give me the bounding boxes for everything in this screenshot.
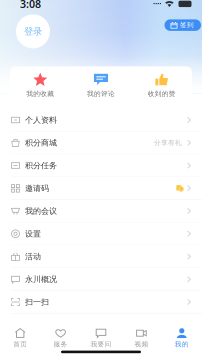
staticText: 签到: [180, 21, 194, 29]
staticText: 我的评论: [87, 90, 115, 98]
staticText: 我的: [175, 340, 189, 348]
staticText: 活动: [25, 252, 41, 261]
button[interactable]: 签到: [164, 19, 201, 31]
staticText: 登录: [24, 26, 42, 37]
staticText: 分享有礼: [154, 139, 182, 147]
button[interactable]: 我的会议: [0, 200, 202, 223]
staticText: 积分商城: [25, 138, 57, 148]
staticText: 收到的赞: [148, 90, 176, 98]
staticText: 永川概况: [25, 274, 57, 284]
button[interactable]: 积分任务: [0, 154, 202, 177]
staticText: 我要问: [90, 340, 111, 348]
staticText: 个人资料: [25, 115, 57, 125]
button[interactable]: 我要问: [81, 328, 121, 348]
button[interactable]: 服务: [40, 328, 81, 348]
staticText: 3:08: [20, 0, 41, 11]
button[interactable]: 个人资料: [0, 109, 202, 132]
button[interactable]: 我的评论: [71, 73, 131, 98]
staticText: 我的会议: [25, 206, 57, 216]
button[interactable]: 视频: [121, 328, 162, 348]
button[interactable]: 设置: [0, 223, 202, 245]
button[interactable]: 我的收藏: [10, 73, 71, 98]
staticText: 服务: [54, 340, 68, 348]
staticText: 扫一扫: [25, 297, 49, 307]
button[interactable]: 收到的赞: [131, 73, 192, 98]
button[interactable]: 我的: [162, 328, 202, 348]
button[interactable]: 邀请码: [0, 177, 202, 200]
button[interactable]: 扫一扫: [0, 291, 202, 314]
staticText: 首页: [13, 340, 27, 348]
staticText: 邀请码: [25, 183, 49, 193]
staticText: 视频: [134, 340, 148, 348]
button[interactable]: 永川概况: [0, 268, 202, 291]
button[interactable]: 登录: [16, 14, 50, 48]
staticText: 我的收藏: [26, 90, 54, 98]
button[interactable]: 活动: [0, 245, 202, 268]
button[interactable]: 首页: [0, 328, 40, 348]
staticText: 积分任务: [25, 161, 57, 170]
button[interactable]: 积分商城: [0, 132, 202, 154]
staticText: 设置: [25, 229, 41, 239]
